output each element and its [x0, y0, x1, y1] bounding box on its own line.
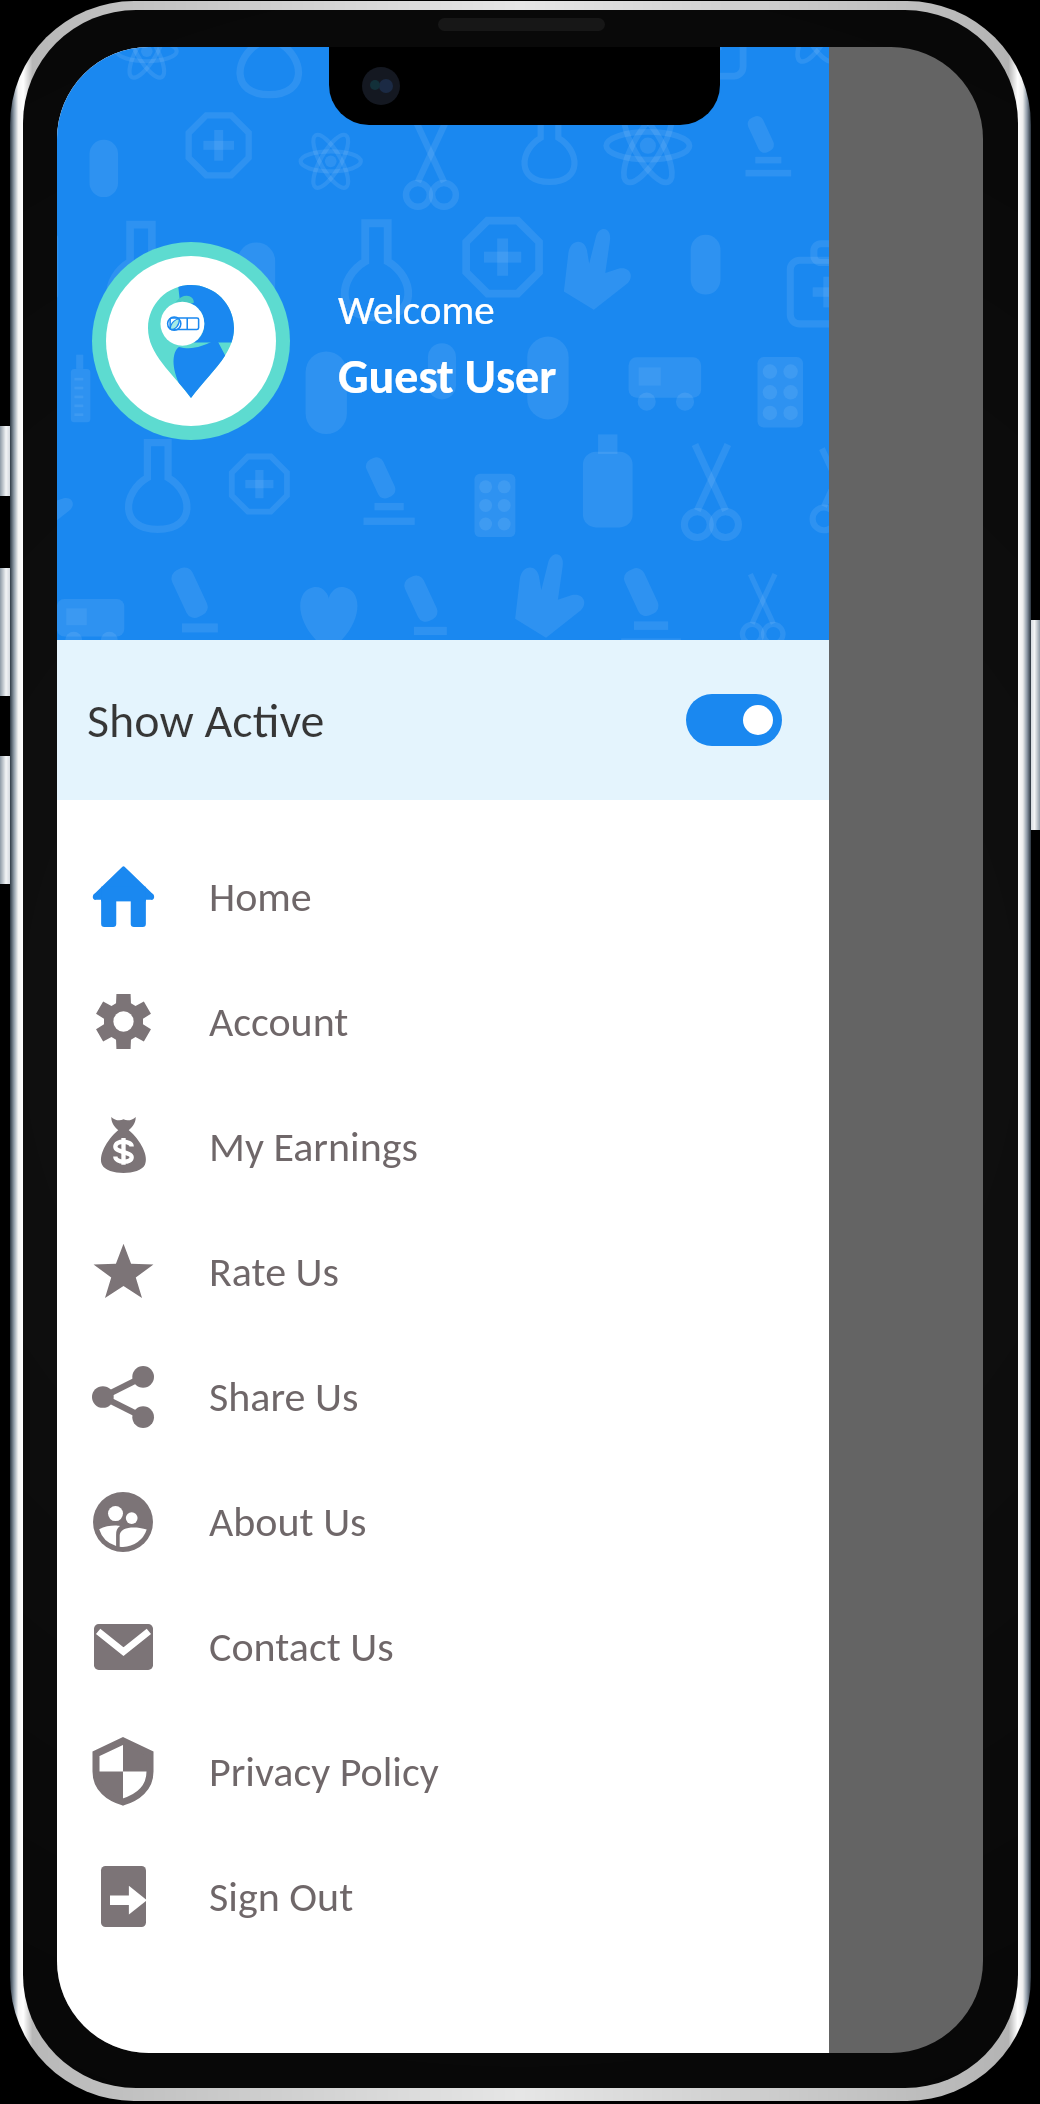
button[interactable]: About Us [57, 1459, 829, 1584]
staticText: Privacy Policy [209, 1746, 439, 1797]
button[interactable]: My Earnings [57, 1084, 829, 1209]
staticText: My Earnings [209, 1121, 418, 1172]
staticText: Sign Out [209, 1871, 354, 1922]
staticText: Contact Us [209, 1621, 394, 1672]
staticText: Rate Us [209, 1246, 339, 1297]
staticText: Guest User [338, 347, 557, 406]
other: Show Active toggle [686, 694, 782, 746]
staticText: Welcome [338, 285, 495, 335]
button[interactable]: Home [57, 834, 829, 959]
button[interactable]: Rate Us [57, 1209, 829, 1334]
button[interactable]: Sign Out [57, 1834, 829, 1959]
button[interactable]: Show Active [57, 640, 829, 800]
button[interactable]: Contact Us [57, 1584, 829, 1709]
staticText: About Us [209, 1496, 367, 1547]
button[interactable]: Privacy Policy [57, 1709, 829, 1834]
staticText: Show Active [87, 691, 325, 750]
staticText: Home [209, 871, 312, 922]
button[interactable]: Account [57, 959, 829, 1084]
staticText: Account [209, 996, 349, 1047]
button[interactable]: Share Us [57, 1334, 829, 1459]
staticText: Share Us [209, 1371, 359, 1422]
